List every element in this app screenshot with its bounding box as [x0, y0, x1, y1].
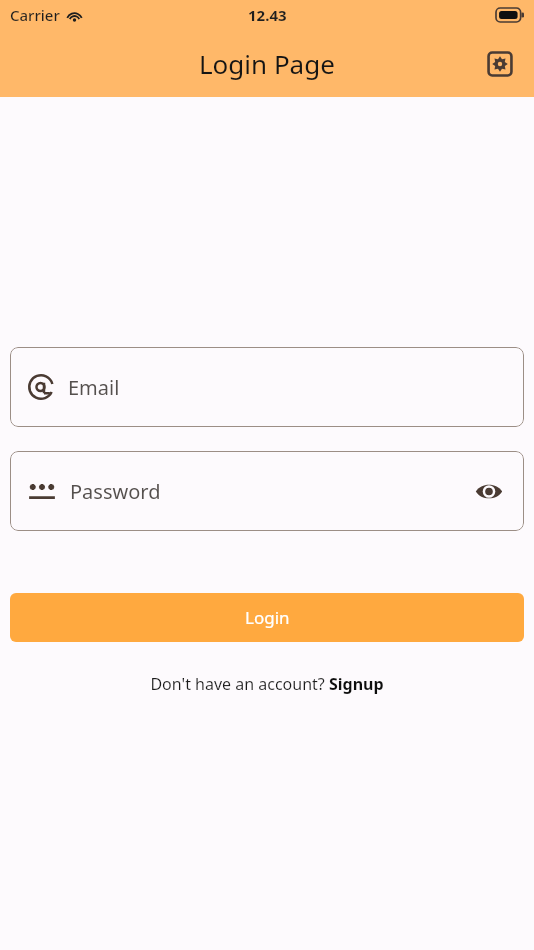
button[interactable]: Don't have an account? Signup: [0, 673, 534, 695]
staticText: Login: [245, 606, 290, 629]
button[interactable]: Email: [10, 347, 524, 427]
staticText: Password: [70, 478, 472, 505]
button[interactable]: Password: [10, 451, 524, 531]
staticText: Carrier: [10, 5, 60, 25]
staticText: Email: [68, 374, 506, 401]
button[interactable]: Toggle password visibility: [472, 474, 506, 508]
staticText: 12.43: [248, 5, 287, 25]
staticText: Login Page: [199, 46, 335, 81]
button[interactable]: Login: [10, 593, 524, 642]
button[interactable]: Settings: [482, 46, 518, 82]
staticText: Don't have an account? Signup: [150, 673, 384, 695]
